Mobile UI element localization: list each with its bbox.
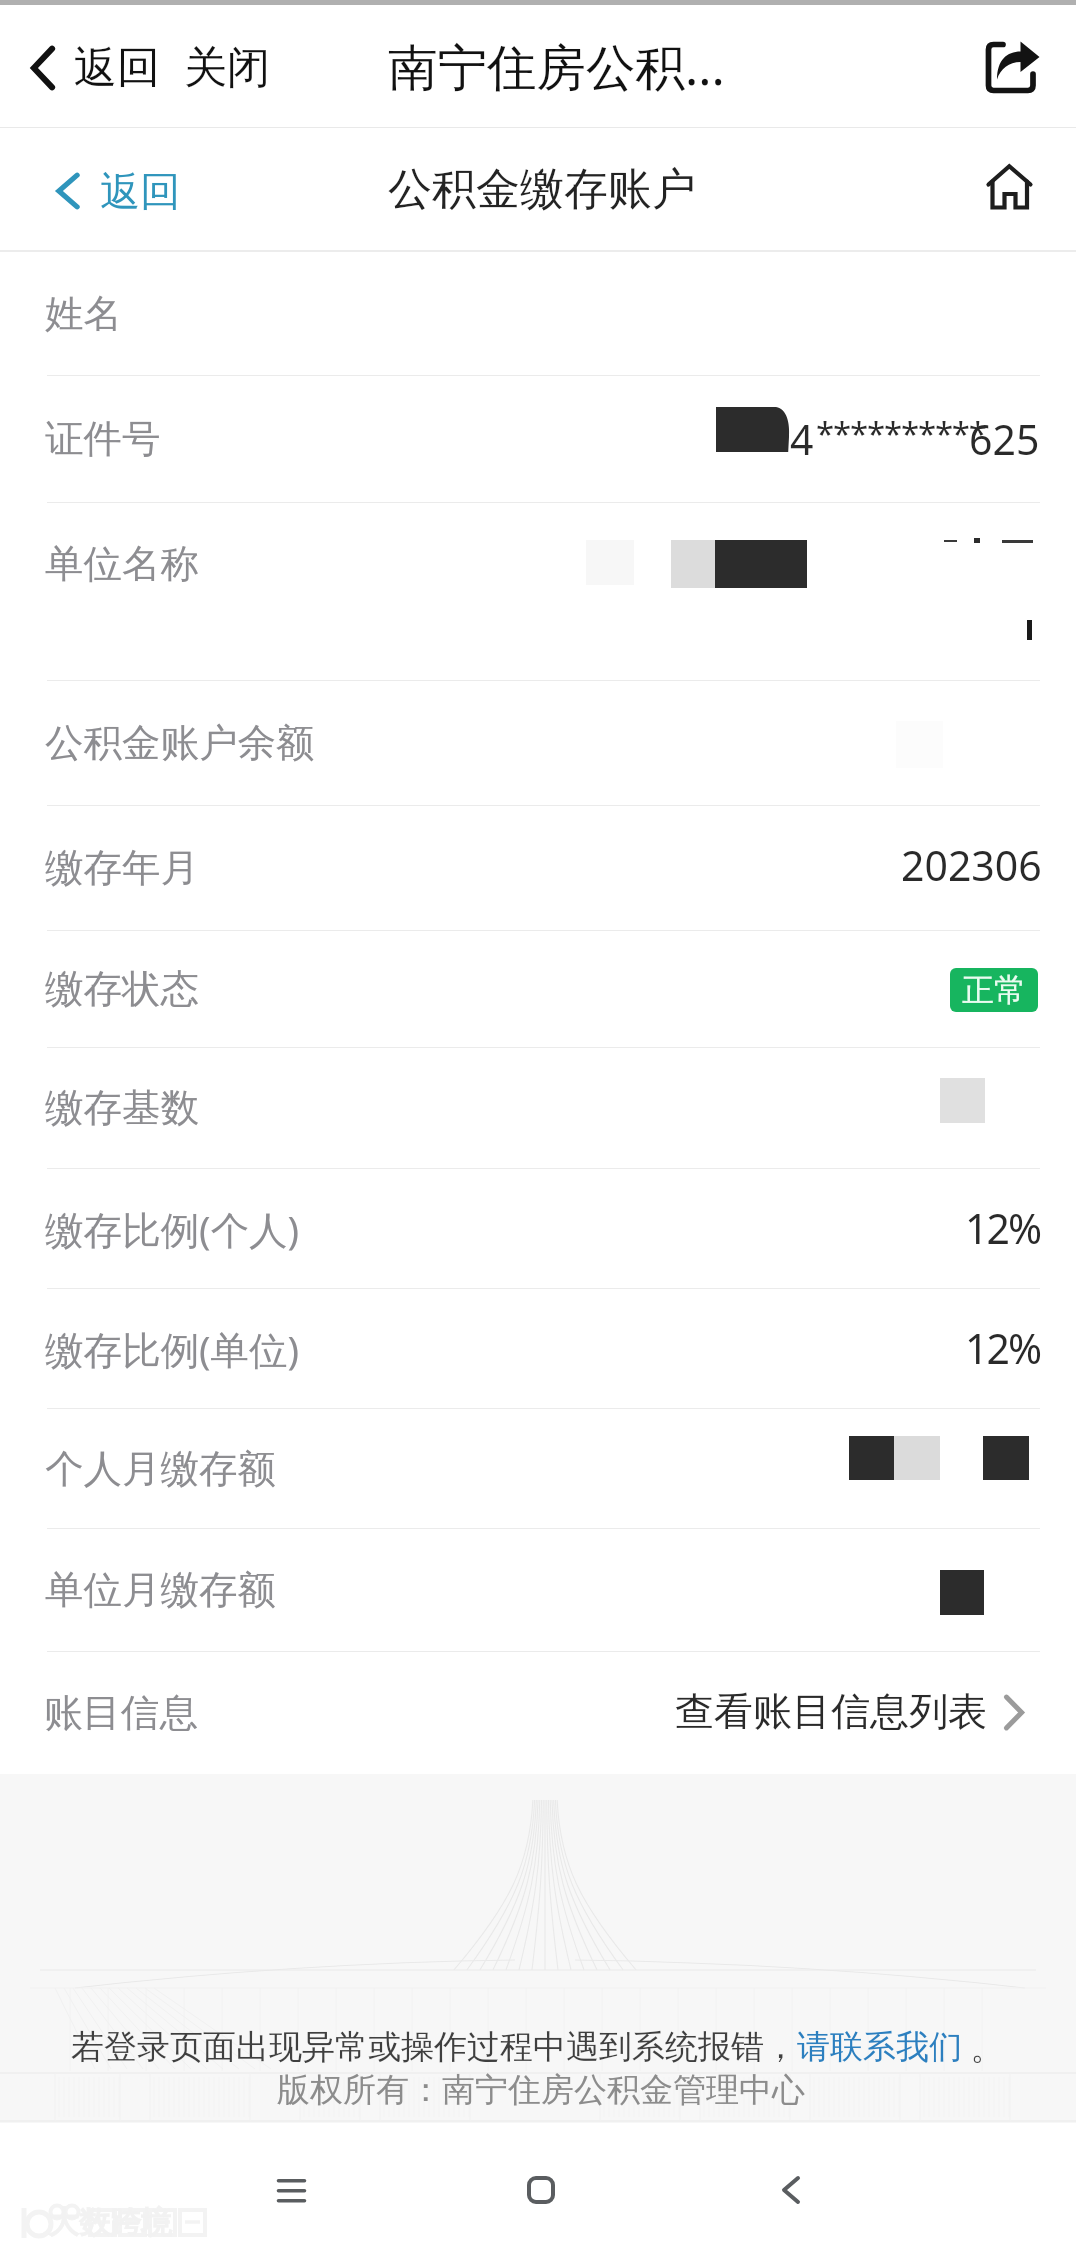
staticText: 12% xyxy=(965,1320,1040,1376)
staticText: 返回 xyxy=(100,166,180,216)
staticText: ********** xyxy=(816,411,986,456)
staticText: 625 xyxy=(969,411,1040,467)
staticText: 姓名 xyxy=(45,290,122,339)
staticText: 返回 xyxy=(74,41,160,95)
staticText: 缴存比例(单位) xyxy=(45,1323,300,1376)
staticText: 个人月缴存额 xyxy=(45,1445,276,1494)
staticText: 缴存年月 xyxy=(45,844,199,893)
button[interactable]: Share xyxy=(963,20,1059,116)
button[interactable]: Back xyxy=(741,2140,841,2240)
staticText: 若登录页面出现异常或操作过程中遇到系统报错， xyxy=(71,2026,797,2068)
staticText: 202306 xyxy=(901,837,1042,893)
button[interactable]: 请联系我们 xyxy=(797,2026,962,2068)
staticText: 。 xyxy=(962,2024,1004,2069)
staticText: 12% xyxy=(965,1200,1040,1256)
staticText: 查看账目信息列表 xyxy=(675,1687,987,1736)
staticText: 缴存基数 xyxy=(45,1084,199,1133)
staticText: 单位月缴存额 xyxy=(45,1566,276,1615)
staticText: 大数跨境 xyxy=(48,2203,172,2242)
staticText: 4 xyxy=(790,411,814,467)
staticText: 单位名称 xyxy=(45,540,199,589)
staticText: 证件号 xyxy=(45,415,161,464)
staticText: 缴存状态 xyxy=(45,965,199,1014)
button[interactable]: 返回 xyxy=(31,23,160,113)
button[interactable]: 返回 xyxy=(56,148,180,234)
button[interactable]: 关闭 xyxy=(184,41,270,95)
button[interactable]: Home xyxy=(491,2140,591,2240)
staticText: 正常 xyxy=(962,970,1026,1010)
staticText: 公积金缴存账户 xyxy=(388,162,696,217)
button[interactable]: Recent apps xyxy=(241,2141,341,2241)
button[interactable]: Home xyxy=(964,142,1054,232)
staticText: 缴存比例(个人) xyxy=(45,1203,300,1256)
button[interactable]: 账目信息 xyxy=(0,1652,1076,1774)
staticText: 南宁住房公积... xyxy=(388,32,725,100)
staticText: 版权所有：南宁住房公积金管理中心 xyxy=(277,2069,805,2111)
staticText: 账目信息 xyxy=(44,1689,198,1738)
staticText: 公积金账户余额 xyxy=(45,719,315,768)
